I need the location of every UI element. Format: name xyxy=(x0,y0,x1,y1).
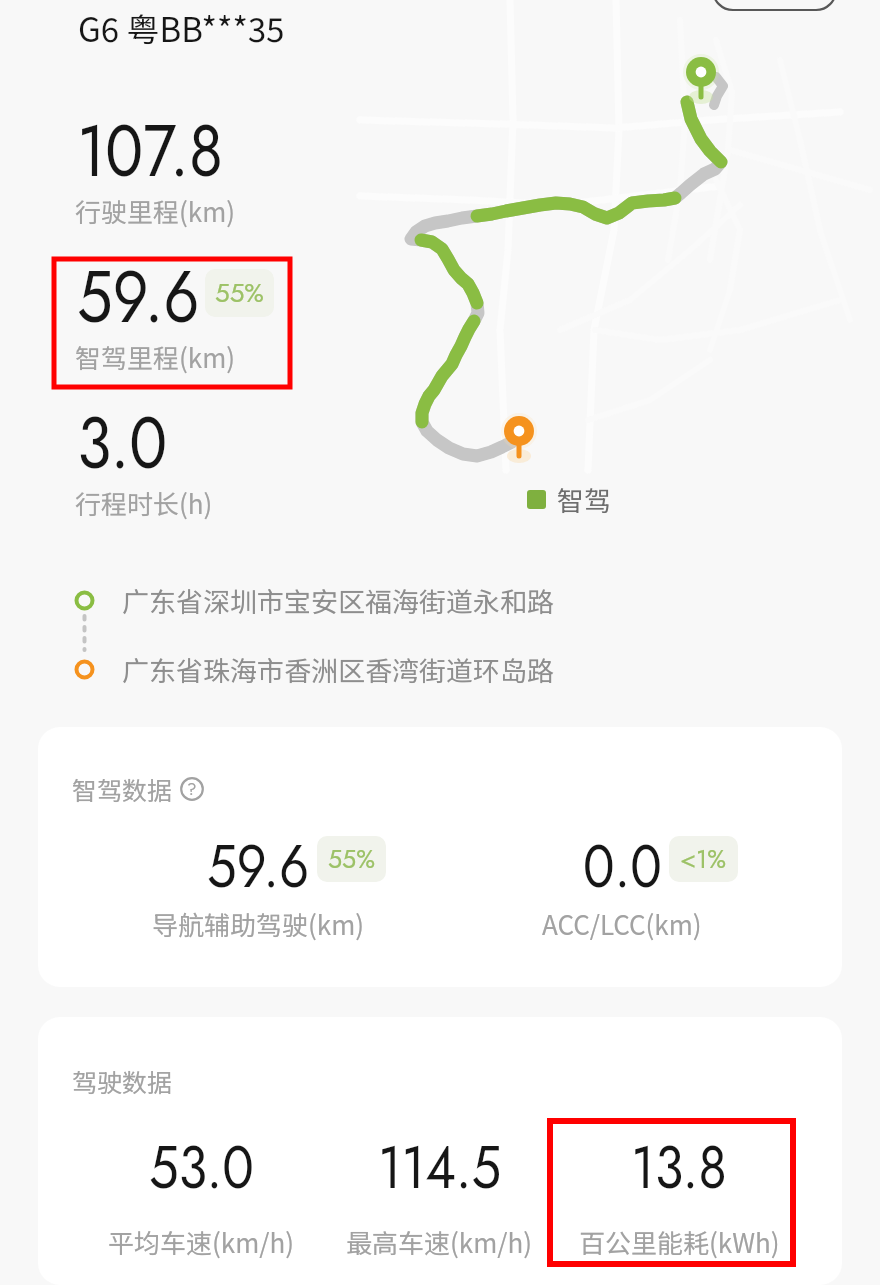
staticText: 智驾里程(km) xyxy=(75,338,236,376)
staticText: 59.6 xyxy=(207,823,309,893)
button[interactable]: 3.0 xyxy=(77,391,327,520)
staticText: 广东省深圳市宝安区福海街道永和路 xyxy=(122,581,554,620)
staticText: 行程时长(h) xyxy=(75,484,213,522)
button[interactable]: 广东省深圳市宝安区福海街道永和路 xyxy=(74,581,554,620)
staticText: 百公里能耗(kWh) xyxy=(579,1223,780,1261)
staticText: 114.5 xyxy=(378,1124,501,1194)
button[interactable]: Trip route map xyxy=(380,0,880,500)
staticText: 广东省珠海市香洲区香湾街道环岛路 xyxy=(122,650,554,689)
staticText: 55% xyxy=(215,274,264,312)
staticText: 13.8 xyxy=(631,1124,727,1194)
staticText: <1% xyxy=(680,841,727,877)
button[interactable]: Help xyxy=(180,777,204,801)
staticText: 行驶里程(km) xyxy=(75,192,236,230)
staticText: 0.0 xyxy=(583,823,662,893)
staticText: 平均车速(km/h) xyxy=(108,1223,294,1261)
staticText: 智驾数据 xyxy=(72,771,173,807)
staticText: G6 粤BB***35 xyxy=(78,4,285,52)
staticText: ACC/LCC(km) xyxy=(542,905,702,943)
button[interactable]: 59.6 xyxy=(77,245,327,374)
button[interactable]: 107.8 xyxy=(77,99,327,228)
staticText: 53.0 xyxy=(149,1124,254,1194)
button[interactable]: 驾驶数据 xyxy=(38,1017,842,1285)
button[interactable]: 广东省珠海市香洲区香湾街道环岛路 xyxy=(74,650,554,689)
button[interactable]: 智驾 xyxy=(527,480,611,519)
staticText: 107.8 xyxy=(77,99,224,203)
staticText: 最高车速(km/h) xyxy=(346,1223,532,1261)
staticText: ? xyxy=(187,777,197,801)
staticText: 3.0 xyxy=(77,391,168,495)
button[interactable]: Share trip xyxy=(713,0,836,10)
button[interactable]: 智驾数据 xyxy=(38,727,842,987)
staticText: 智驾 xyxy=(557,480,611,519)
staticText: 驾驶数据 xyxy=(72,1063,173,1099)
staticText: 59.6 xyxy=(77,245,200,349)
staticText: 导航辅助驾驶(km) xyxy=(152,905,365,943)
staticText: 55% xyxy=(328,841,375,877)
